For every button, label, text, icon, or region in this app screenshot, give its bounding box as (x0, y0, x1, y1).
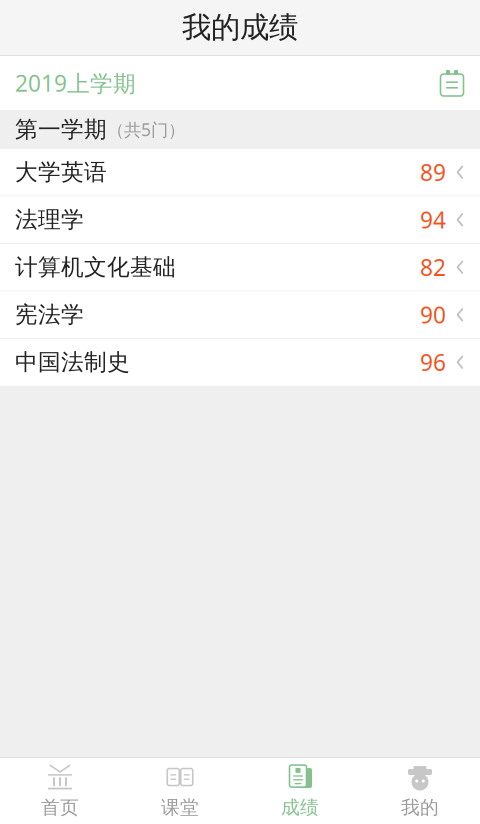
staticText: 计算机文化基础 (15, 253, 176, 281)
button[interactable]: 中国法制史 (0, 339, 480, 385)
button[interactable]: 课堂 (120, 758, 240, 824)
button[interactable]: 成绩 (240, 758, 360, 824)
staticText: 96 (420, 347, 446, 377)
staticText: 中国法制史 (15, 348, 130, 376)
staticText: 法理学 (15, 206, 84, 234)
staticText: （共5门） (107, 118, 185, 141)
button[interactable]: 大学英语 (0, 149, 480, 195)
button[interactable]: 计算机文化基础 (0, 244, 480, 290)
button[interactable]: 2019上学期 (0, 56, 480, 110)
staticText: 89 (420, 157, 446, 187)
staticText: 课堂 (161, 796, 199, 819)
staticText: 82 (420, 252, 446, 282)
button[interactable]: 宪法学 (0, 291, 480, 338)
staticText: 第一学期 (15, 116, 107, 143)
button[interactable]: 我的 (360, 758, 480, 824)
staticText: 我的 (401, 796, 439, 819)
staticText: 我的成绩 (182, 9, 298, 45)
staticText: 宪法学 (15, 301, 84, 329)
staticText: 90 (420, 300, 446, 330)
staticText: 2019上学期 (15, 68, 136, 98)
button[interactable]: 法理学 (0, 196, 480, 243)
button[interactable]: 首页 (0, 758, 120, 824)
staticText: 大学英语 (15, 158, 107, 186)
staticText: 94 (420, 205, 446, 235)
staticText: 成绩 (281, 796, 319, 819)
staticText: 首页 (41, 796, 79, 819)
